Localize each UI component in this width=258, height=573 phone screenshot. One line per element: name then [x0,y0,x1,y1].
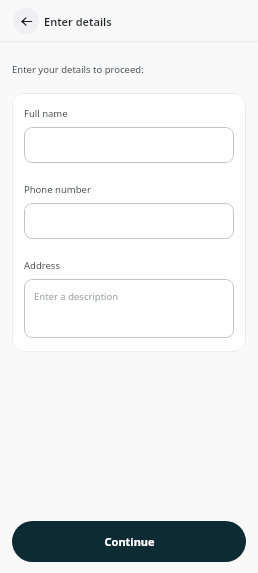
staticText: Full name [24,107,68,120]
staticText: Enter a description [34,290,119,303]
button[interactable] [24,203,234,239]
button[interactable]: Back [13,8,39,34]
button[interactable]: Enter a description [24,279,234,338]
staticText: Phone number [24,183,91,196]
button[interactable]: Continue [12,521,246,562]
staticText: Enter your details to proceed: [12,63,144,76]
staticText: Address [24,259,60,272]
staticText: Enter details [44,14,112,29]
button[interactable] [24,127,234,163]
staticText: Continue [104,534,155,549]
